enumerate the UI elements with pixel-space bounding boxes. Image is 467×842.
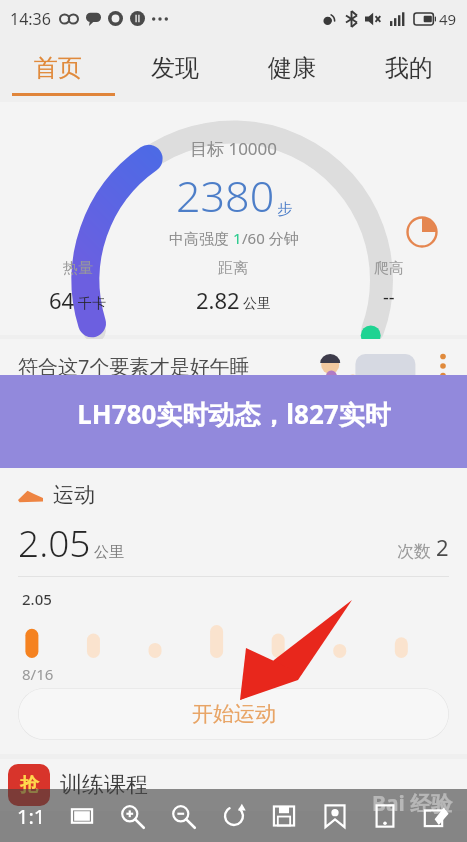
staticText: 千卡 xyxy=(78,295,106,313)
button[interactable]: Rotate xyxy=(217,799,251,833)
button[interactable]: 距离 xyxy=(155,259,311,315)
staticText: 健康 xyxy=(268,53,316,83)
staticText: 2380 xyxy=(176,166,275,225)
button[interactable]: 开始运动 xyxy=(18,688,449,740)
staticText: 训练课程 xyxy=(60,771,148,799)
staticText: 符合这7个要素才是好午睡 xyxy=(18,353,250,380)
staticText: 64 xyxy=(49,285,75,315)
button[interactable]: Save xyxy=(267,799,301,833)
staticText: 目标 10000 xyxy=(190,137,278,160)
staticText: 2.05 xyxy=(22,589,52,609)
staticText: 开始运动 xyxy=(192,701,276,727)
button[interactable]: 抢 xyxy=(8,759,467,811)
button[interactable]: Share xyxy=(419,799,453,833)
button[interactable]: Crop xyxy=(65,799,99,833)
staticText: 1:1 xyxy=(17,803,46,830)
staticText: 14:36 xyxy=(10,8,51,30)
button[interactable]: 爬高 xyxy=(311,259,467,310)
button[interactable]: 热量 xyxy=(0,259,155,315)
staticText: 发现 xyxy=(151,53,199,83)
staticText: 2 xyxy=(436,532,449,562)
button[interactable]: 首页 xyxy=(0,37,116,99)
staticText: Bai 经验 xyxy=(372,789,453,818)
staticText: 抢 xyxy=(20,773,39,797)
staticText: 2.05 xyxy=(18,517,91,567)
staticText: 公里 xyxy=(243,295,271,313)
staticText: 首页 xyxy=(34,53,82,83)
staticText: 热量 xyxy=(63,259,93,278)
staticText: 距离 xyxy=(218,259,248,278)
button[interactable]: Zoom in xyxy=(115,799,149,833)
button[interactable]: Zoom out xyxy=(166,799,200,833)
button[interactable]: Bookmark xyxy=(368,799,402,833)
staticText: 查看详情 xyxy=(18,400,94,424)
staticText: /60 分钟 xyxy=(242,228,299,248)
staticText: -- xyxy=(383,285,395,310)
staticText: 步 xyxy=(277,200,292,219)
staticText: 2.82 xyxy=(196,285,240,315)
staticText: 次数 xyxy=(397,539,436,562)
staticText: 1 xyxy=(233,228,242,248)
staticText: LH780实时动态，l827实时 xyxy=(77,396,391,432)
button[interactable]: Statistics xyxy=(406,216,438,248)
staticText: 49 xyxy=(439,9,457,29)
button[interactable]: 我的 xyxy=(350,37,467,99)
button[interactable]: Favorite xyxy=(318,799,352,833)
staticText: 运动 xyxy=(53,482,95,508)
staticText: 中高强度 xyxy=(169,228,233,248)
button[interactable]: Actual size xyxy=(14,799,48,833)
staticText: 爬高 xyxy=(374,259,404,278)
button[interactable]: More options xyxy=(432,349,454,383)
button[interactable]: 健康 xyxy=(233,37,350,99)
staticText: 8/16 xyxy=(22,664,54,684)
button[interactable]: 发现 xyxy=(116,37,233,99)
staticText: 我的 xyxy=(385,53,433,83)
staticText: 公里 xyxy=(94,543,124,562)
